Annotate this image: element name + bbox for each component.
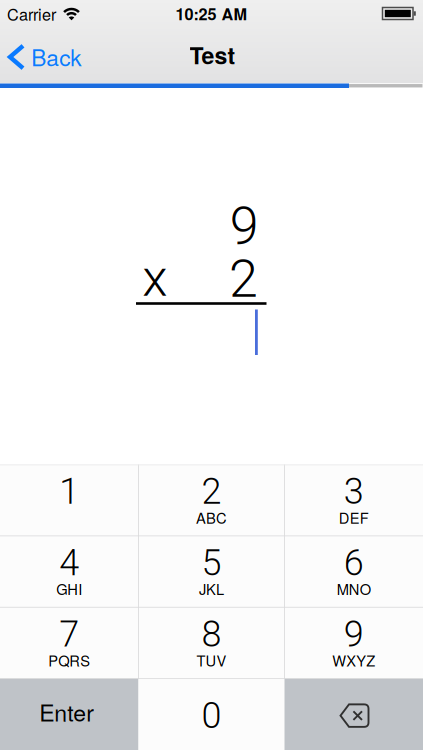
button[interactable]: 2 (138, 464, 284, 536)
staticText: MNO (337, 578, 371, 599)
staticText: TUV (196, 650, 226, 671)
staticText: WXYZ (332, 650, 375, 671)
staticText: Back (31, 40, 81, 73)
staticText: 9 (344, 613, 364, 655)
staticText: DEF (339, 507, 369, 528)
button[interactable]: 4 (0, 536, 138, 607)
staticText: Carrier (7, 2, 56, 25)
button[interactable]: Delete (284, 679, 423, 750)
button[interactable]: 9 (284, 607, 423, 679)
staticText: 4 (59, 542, 79, 584)
staticText: 5 (201, 542, 221, 584)
button[interactable]: 8 (138, 607, 284, 679)
staticText: 2 (201, 470, 221, 513)
button[interactable]: Back (0, 40, 95, 74)
button[interactable]: 3 (284, 464, 423, 536)
staticText: 2 (229, 248, 258, 309)
staticText: PQRS (48, 650, 90, 671)
button[interactable]: Enter (0, 679, 138, 750)
staticText: x (142, 247, 167, 308)
staticText: Enter (39, 695, 94, 728)
staticText: JKL (199, 578, 224, 599)
staticText: GHI (56, 578, 82, 599)
button[interactable]: 6 (284, 536, 423, 607)
button[interactable]: 5 (138, 536, 284, 607)
button[interactable]: 1 (0, 464, 138, 536)
button[interactable]: 0 (138, 679, 284, 750)
staticText: 7 (59, 613, 79, 655)
staticText: 8 (201, 613, 221, 655)
staticText: Test (189, 38, 235, 71)
staticText: 1 (59, 470, 79, 513)
staticText: 9 (230, 195, 259, 256)
staticText: 0 (201, 695, 221, 737)
staticText: ABC (196, 507, 227, 528)
button[interactable]: 7 (0, 607, 138, 679)
staticText: 10:25 AM (175, 2, 247, 25)
staticText: 6 (344, 542, 364, 584)
staticText: 3 (344, 470, 364, 513)
